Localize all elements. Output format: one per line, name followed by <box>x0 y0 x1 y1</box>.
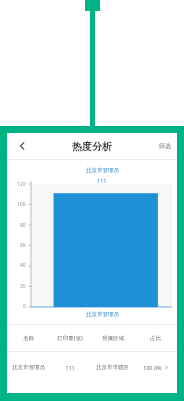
button[interactable]: 筛选 <box>153 138 177 154</box>
staticText: 热度分析 <box>72 140 112 153</box>
staticText: 40 <box>20 262 26 269</box>
staticText: 北京市管理员 <box>86 311 119 318</box>
button[interactable]: 北京市管理员 <box>7 352 177 382</box>
staticText: 所属区域 <box>102 335 124 342</box>
staticText: 120 <box>17 181 26 188</box>
staticText: 0 <box>23 303 26 310</box>
staticText: 打印量(张) <box>57 334 83 342</box>
staticText: 100.0% <box>143 364 162 371</box>
staticText: 80 <box>20 222 26 229</box>
staticText: 100 <box>17 201 26 208</box>
staticText: 筛选 <box>159 142 171 150</box>
staticText: 北京市市辖区 <box>96 364 129 371</box>
staticText: 名称 <box>23 335 34 342</box>
button[interactable]: Back <box>11 135 33 157</box>
staticText: 北京市管理员 <box>86 167 119 174</box>
staticText: 北京市管理员 <box>12 364 45 371</box>
staticText: 20 <box>20 283 26 290</box>
staticText: 111 <box>97 177 107 184</box>
staticText: 111 <box>65 364 75 371</box>
staticText: 60 <box>20 242 26 249</box>
staticText: 占比 <box>150 335 161 342</box>
